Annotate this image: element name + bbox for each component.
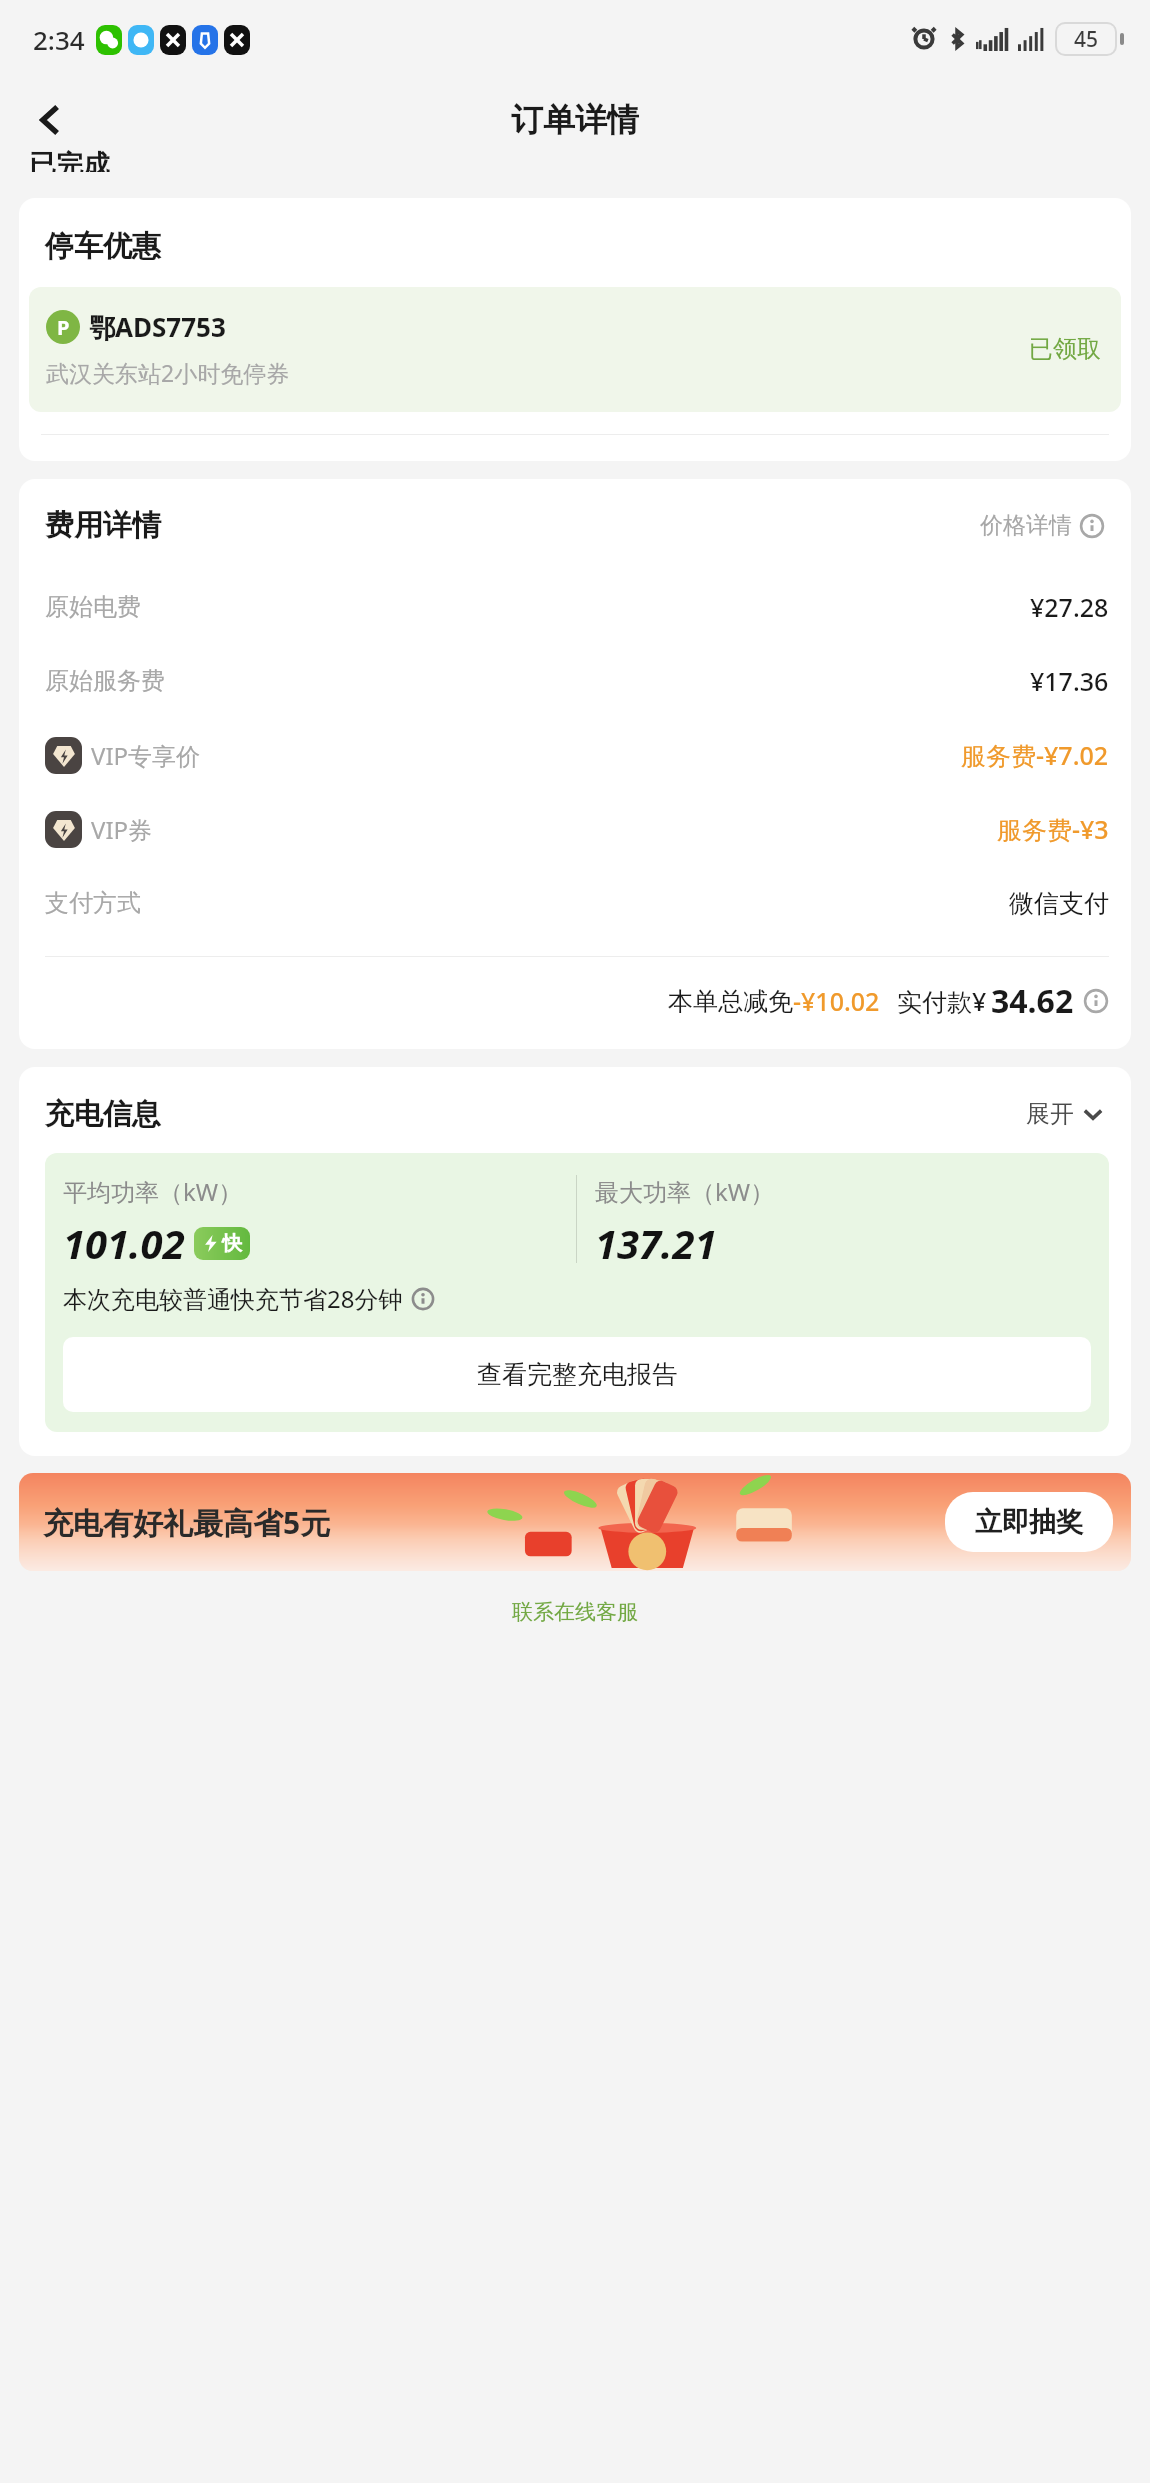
staticText: -¥10.02	[793, 984, 880, 1018]
staticText: 停车优惠	[45, 228, 161, 265]
staticText: 已完成	[29, 148, 110, 172]
staticText: 原始电费	[45, 592, 141, 622]
button[interactable]: 本单总减免	[45, 979, 1109, 1023]
staticText: 平均功率（kW）	[63, 1175, 243, 1208]
staticText: ¥17.36	[1030, 664, 1109, 698]
staticText: 联系在线客服	[512, 1599, 638, 1625]
staticText: 支付方式	[45, 888, 141, 918]
staticText: 立即抽奖	[975, 1505, 1083, 1539]
staticText: 充电有好礼最高省5元	[43, 1502, 331, 1543]
staticText: 鄂ADS7753	[89, 309, 226, 345]
staticText: 查看完整充电报告	[477, 1359, 677, 1390]
button[interactable]: 返回	[18, 87, 84, 153]
staticText: 费用详情	[45, 507, 161, 544]
staticText: 45	[1074, 25, 1099, 54]
staticText: 已领取	[1029, 334, 1101, 364]
button[interactable]: 联系在线客服	[504, 1595, 646, 1629]
staticText: 原始服务费	[45, 666, 165, 696]
staticText: VIP专享价	[91, 739, 201, 772]
staticText: 最大功率（kW）	[595, 1175, 775, 1208]
button[interactable]: 查看完整充电报告	[63, 1337, 1091, 1412]
staticText: 充电信息	[45, 1096, 161, 1133]
staticText: 实付款¥	[897, 984, 987, 1018]
button[interactable]: P	[29, 287, 1121, 412]
staticText: 本次充电较普通快充节省28分钟	[63, 1282, 403, 1315]
button[interactable]: 价格详情	[976, 507, 1109, 544]
staticText: 订单详情	[511, 100, 639, 140]
staticText: 服务费-¥3	[997, 812, 1109, 846]
staticText: 34.62	[991, 979, 1074, 1023]
staticText: 101.02	[63, 1216, 185, 1270]
staticText: 本单总减免	[668, 986, 793, 1017]
staticText: 展开	[1026, 1099, 1074, 1129]
staticText: 2:34	[33, 22, 85, 57]
staticText: 微信支付	[1009, 888, 1109, 919]
staticText: 快	[222, 1231, 242, 1256]
staticText: P	[57, 314, 70, 341]
staticText: 137.21	[595, 1216, 717, 1270]
staticText: 服务费-¥7.02	[961, 738, 1109, 772]
button[interactable]: 立即抽奖	[945, 1492, 1113, 1552]
staticText: VIP券	[91, 813, 153, 846]
staticText: 价格详情	[980, 511, 1072, 540]
button[interactable]: 充电有好礼最高省5元	[19, 1473, 1131, 1571]
staticText: 武汉关东站2小时免停券	[46, 357, 290, 388]
staticText: ¥27.28	[1030, 590, 1109, 624]
button[interactable]: 展开	[1022, 1095, 1109, 1133]
